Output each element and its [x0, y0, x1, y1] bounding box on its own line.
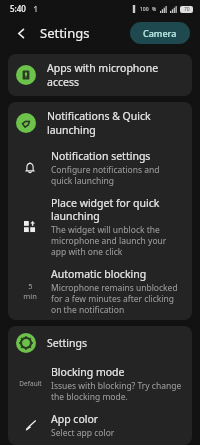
staticText: min [23, 291, 37, 301]
staticText: Configure notifications and quick launch… [51, 164, 182, 186]
staticText: Blocking mode [51, 365, 125, 379]
staticText: Apps with microphone access [47, 61, 184, 89]
staticText: Issues with blocking? Try change the blo… [51, 380, 182, 402]
staticText: Settings [47, 336, 87, 350]
button[interactable]: Camera [130, 22, 190, 44]
staticText: 5 [28, 281, 33, 291]
staticText: Microphone remains unblocked for a few m… [51, 282, 182, 315]
button[interactable]: Settings [8, 326, 192, 360]
staticText: % [152, 6, 157, 13]
staticText: The widget will unblock the microphone a… [51, 224, 182, 257]
button[interactable]: Place widget for quick launching [8, 191, 192, 262]
staticText: Automatic blocking [51, 267, 147, 281]
button[interactable]: Default [8, 360, 192, 407]
staticText: 5:40 [10, 3, 26, 14]
button[interactable]: Back [10, 22, 32, 44]
staticText: Place widget for quick launching [51, 196, 182, 223]
button[interactable]: 5 [8, 262, 192, 320]
staticText: 70 [184, 6, 190, 13]
staticText: Notification settings [51, 149, 151, 163]
staticText: Notifications & Quick launching [47, 109, 184, 137]
button[interactable]: App color [8, 407, 192, 444]
staticText: Settings [40, 24, 90, 42]
staticText: Select app color [51, 427, 115, 439]
staticText: Default [19, 379, 42, 388]
button[interactable]: Apps with microphone access [8, 54, 192, 96]
staticText: App color [51, 412, 99, 426]
button[interactable]: Change language [8, 444, 192, 445]
staticText: 100 [140, 6, 149, 13]
button[interactable]: Notification settings [8, 144, 192, 191]
button[interactable]: Notifications & Quick launching [8, 102, 192, 144]
staticText: Camera [143, 27, 177, 39]
